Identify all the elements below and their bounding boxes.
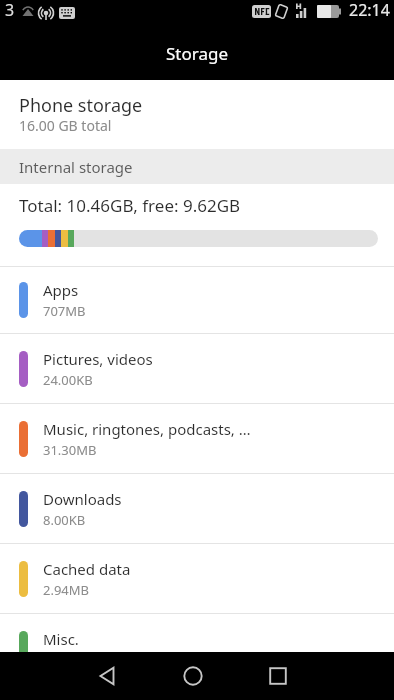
staticText: Pictures, videos bbox=[43, 349, 153, 369]
staticText: 707MB bbox=[43, 302, 86, 320]
staticText: 3 bbox=[5, 0, 15, 21]
staticText: 16.00 GB total bbox=[19, 116, 112, 135]
button[interactable]: Cached data bbox=[0, 543, 394, 613]
button[interactable]: Misc. bbox=[0, 613, 394, 683]
staticText: 3.60MB bbox=[43, 651, 90, 669]
staticText: Misc. bbox=[43, 629, 79, 649]
staticText: Storage bbox=[166, 42, 229, 65]
staticText: 22:14 bbox=[349, 0, 390, 21]
button[interactable]: Phone storage bbox=[0, 80, 394, 149]
button[interactable] bbox=[235, 652, 320, 700]
staticText: Downloads bbox=[43, 489, 122, 509]
button[interactable]: Pictures, videos bbox=[0, 333, 394, 403]
button[interactable]: Music, ringtones, podcasts, … bbox=[0, 403, 394, 473]
staticText: Total: 10.46GB, free: 9.62GB bbox=[19, 194, 241, 217]
staticText: Phone storage bbox=[19, 93, 143, 118]
staticText: Apps bbox=[43, 280, 79, 300]
staticText: 31.30MB bbox=[43, 441, 97, 459]
staticText: 2.94MB bbox=[43, 581, 90, 599]
staticText: 8.00KB bbox=[43, 511, 86, 529]
button[interactable] bbox=[66, 652, 150, 700]
button[interactable] bbox=[150, 652, 235, 700]
button[interactable]: Downloads bbox=[0, 473, 394, 543]
button[interactable]: Apps bbox=[0, 266, 394, 333]
staticText: 24.00KB bbox=[43, 371, 93, 389]
staticText: Music, ringtones, podcasts, … bbox=[43, 419, 251, 439]
staticText: Internal storage bbox=[19, 157, 133, 177]
staticText: Cached data bbox=[43, 559, 131, 579]
